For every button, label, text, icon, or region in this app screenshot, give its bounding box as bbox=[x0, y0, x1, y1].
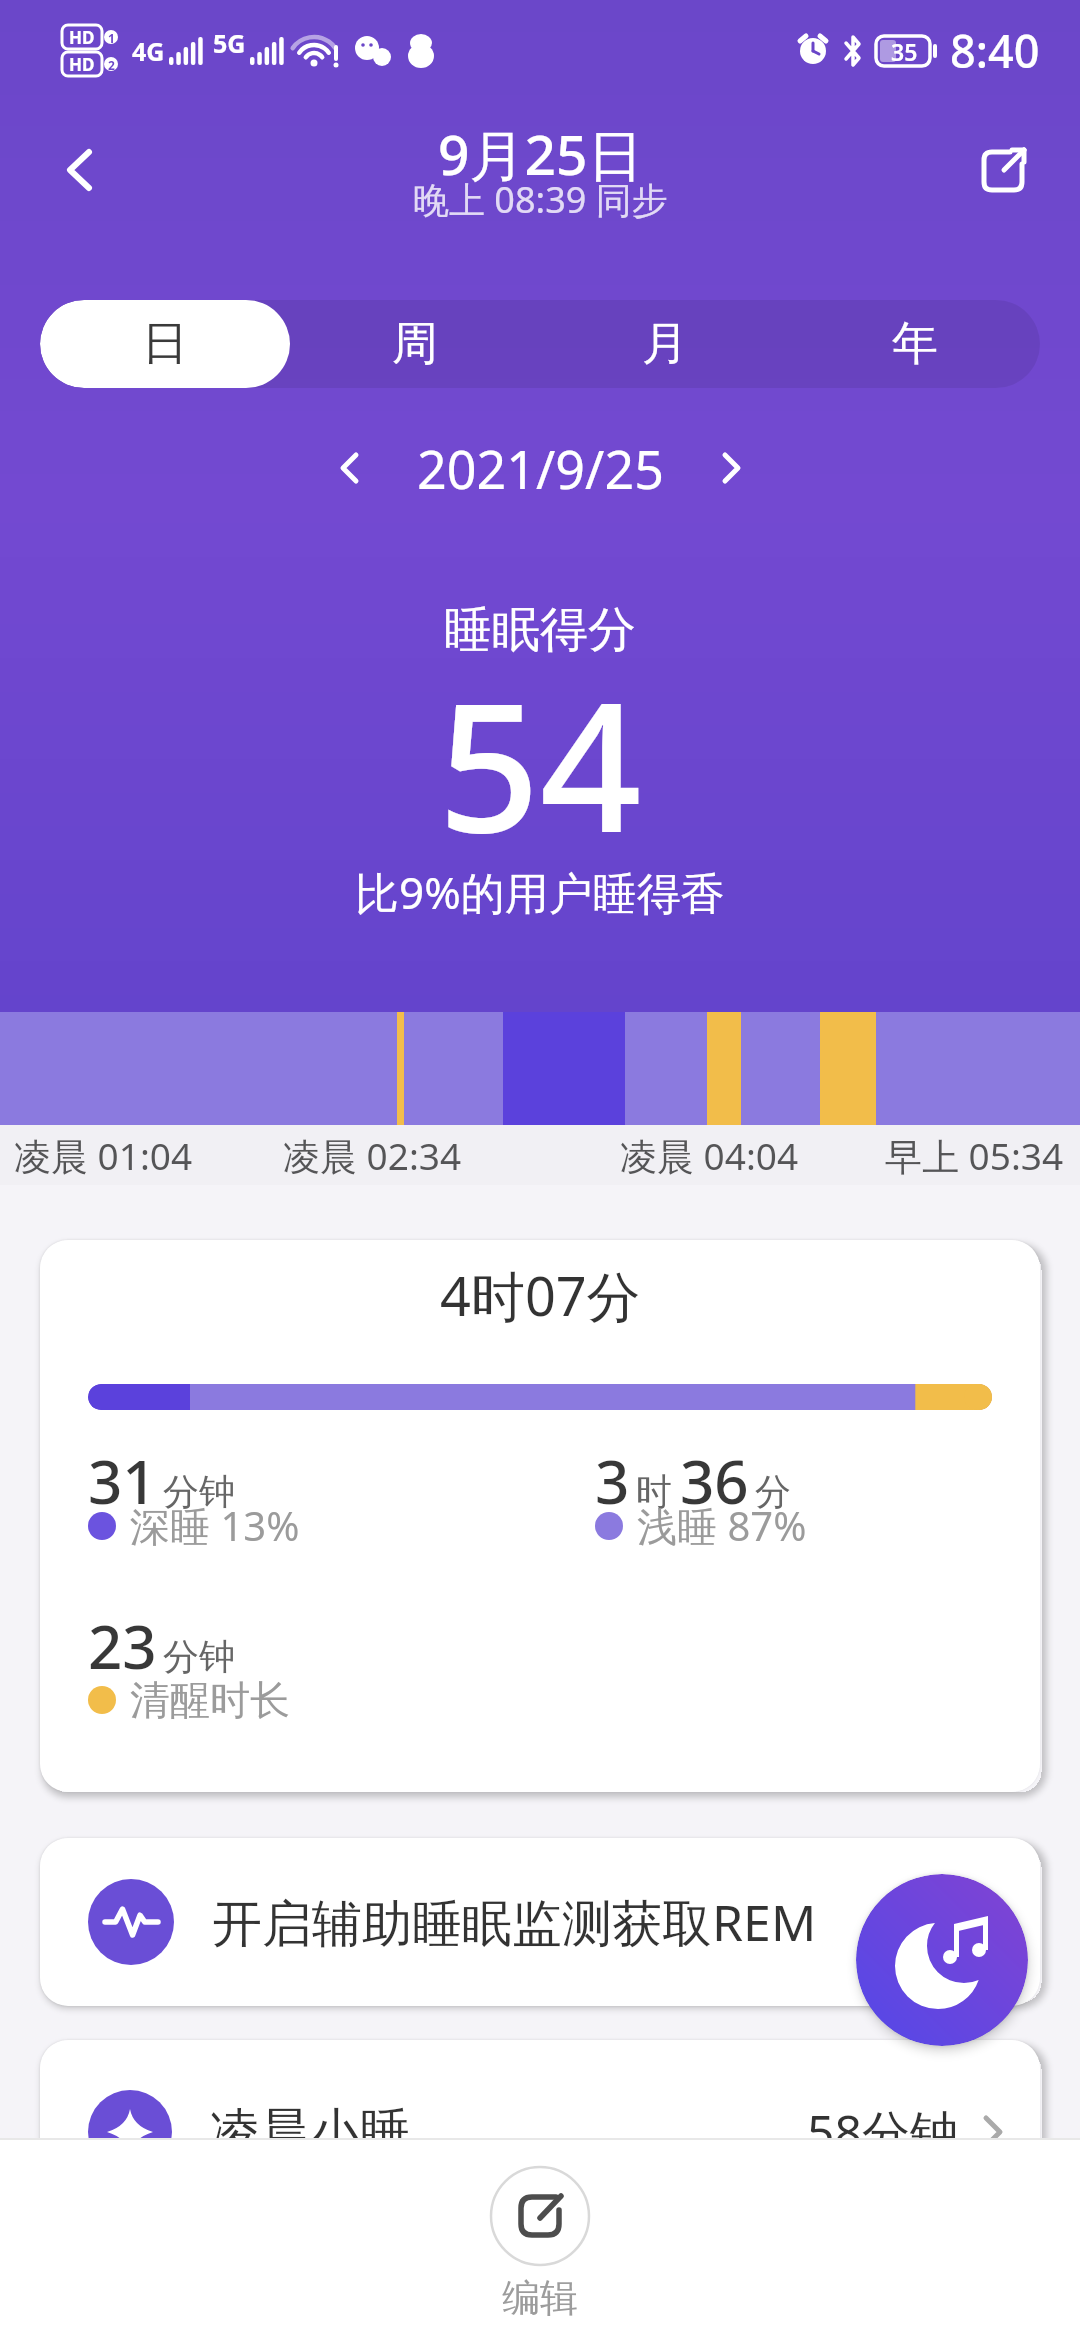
staticText: 3 bbox=[595, 1440, 630, 1522]
staticText: 36 bbox=[680, 1440, 749, 1522]
staticText: 凌晨 01:04 bbox=[14, 1130, 193, 1181]
staticText: 月 bbox=[642, 315, 688, 373]
staticText: 周 bbox=[392, 315, 438, 373]
staticText: 分钟 bbox=[163, 1469, 235, 1514]
staticText: 时 bbox=[636, 1469, 672, 1514]
button[interactable] bbox=[48, 138, 112, 202]
staticText: 54 bbox=[438, 642, 642, 884]
button[interactable] bbox=[317, 436, 381, 500]
staticText: 4时07分 bbox=[440, 1258, 641, 1332]
button[interactable] bbox=[972, 138, 1036, 202]
staticText: 5G bbox=[213, 26, 246, 60]
staticText: HD bbox=[69, 53, 95, 76]
button[interactable]: 月 bbox=[540, 300, 790, 388]
button[interactable]: 周 bbox=[290, 300, 540, 388]
staticText: 2 bbox=[108, 57, 115, 71]
button[interactable]: 编辑 bbox=[490, 2166, 590, 2322]
button[interactable]: 年 bbox=[790, 300, 1040, 388]
staticText: HD bbox=[69, 26, 95, 49]
staticText: 早上 05:34 bbox=[885, 1130, 1064, 1181]
staticText: 晚上 08:39 同步 bbox=[413, 175, 668, 224]
staticText: 睡眠得分 bbox=[444, 600, 636, 660]
staticText: 编辑 bbox=[502, 2274, 578, 2322]
staticText: 清醒时长 bbox=[130, 1675, 290, 1725]
button[interactable]: 凌晨小睡 bbox=[40, 2040, 1040, 2260]
button[interactable] bbox=[856, 1874, 1028, 2046]
staticText: 8:40 bbox=[950, 20, 1040, 81]
staticText: 31 bbox=[88, 1440, 157, 1522]
staticText: 分钟 bbox=[163, 1634, 235, 1679]
staticText: 35 bbox=[891, 36, 918, 67]
staticText: 9月25日 bbox=[438, 116, 643, 191]
staticText: 年 bbox=[892, 315, 938, 373]
staticText: 凌晨 02:34 bbox=[283, 1130, 462, 1181]
staticText: 2021/9/25 bbox=[417, 433, 664, 504]
staticText: 23 bbox=[88, 1605, 157, 1687]
staticText: 日 bbox=[142, 315, 188, 373]
staticText: 开启辅助睡眠监测获取REM bbox=[212, 1888, 817, 1956]
button[interactable] bbox=[700, 436, 764, 500]
button[interactable]: 日 bbox=[40, 300, 290, 388]
staticText: 58分钟 bbox=[807, 2099, 958, 2165]
staticText: 凌晨 04:04 bbox=[620, 1130, 799, 1181]
staticText: 1 bbox=[108, 30, 115, 44]
staticText: 凌晨小睡 bbox=[210, 2101, 410, 2164]
staticText: 比9%的用户睡得香 bbox=[355, 862, 725, 922]
button[interactable]: 开启辅助睡眠监测获取REM bbox=[40, 1838, 1040, 2006]
staticText: 浅睡 87% bbox=[637, 1498, 807, 1553]
staticText: 分 bbox=[755, 1469, 791, 1514]
staticText: 4G bbox=[132, 34, 165, 68]
staticText: 深睡 13% bbox=[130, 1498, 300, 1553]
